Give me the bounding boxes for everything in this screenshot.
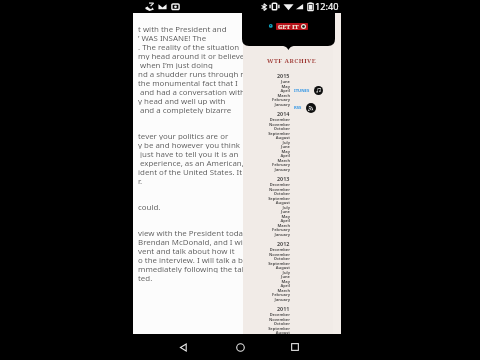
button[interactable]: May (243, 149, 290, 154)
staticText: Brendan McDonald, and I will (138, 237, 243, 246)
staticText: ted. (138, 273, 153, 282)
button[interactable]: October (243, 126, 290, 131)
staticText: 12:40 (315, 0, 339, 13)
button[interactable]: October (243, 191, 290, 196)
staticText: October (273, 256, 290, 261)
button[interactable]: September (243, 326, 290, 331)
staticText: September (268, 196, 290, 201)
button[interactable]: May (243, 214, 290, 219)
button[interactable]: July (243, 140, 290, 145)
button[interactable]: December (243, 247, 290, 252)
button[interactable]: March (243, 288, 290, 293)
button[interactable]: December (243, 117, 290, 122)
staticText: February (272, 227, 290, 232)
button[interactable]: November (243, 252, 290, 257)
button[interactable]: March (243, 158, 290, 163)
button[interactable]: October (243, 256, 290, 261)
button[interactable]: November (243, 187, 290, 192)
button[interactable]: July (243, 205, 290, 210)
staticText: July (282, 205, 290, 210)
staticText: October (273, 126, 290, 131)
button[interactable]: April (243, 348, 290, 353)
staticText: November (269, 187, 290, 192)
button[interactable]: December (243, 312, 290, 317)
staticText: o the interview. I will talk a bit (138, 255, 243, 264)
staticText: tever your politics are or (138, 131, 229, 140)
button[interactable]: February (243, 162, 290, 167)
button[interactable]: January (243, 297, 290, 302)
staticText: January (274, 232, 290, 237)
button[interactable]: June (243, 79, 290, 84)
button[interactable]: September (243, 131, 290, 136)
staticText: February (272, 162, 290, 167)
button[interactable]: May (243, 344, 290, 349)
button[interactable]: July (243, 270, 290, 275)
staticText: April (280, 153, 290, 158)
staticText: February (272, 97, 290, 102)
staticText: the monumental fact that I (138, 78, 238, 87)
staticText: 2013 (277, 175, 290, 182)
button[interactable]: Recents (281, 334, 309, 360)
staticText: January (274, 102, 290, 107)
staticText: February (272, 292, 290, 297)
staticText: vent and talk about how it (138, 246, 235, 255)
button[interactable]: May (243, 84, 290, 89)
staticText: June (281, 79, 290, 84)
button[interactable]: August (243, 265, 290, 270)
button[interactable]: Home (226, 334, 254, 360)
staticText: y be and however you think (138, 140, 240, 149)
button[interactable]: August (243, 135, 290, 140)
staticText: April (280, 218, 290, 223)
button[interactable]: April (243, 88, 290, 93)
staticText: 2012 (277, 240, 290, 247)
button[interactable]: May (243, 279, 290, 284)
staticText: ident of the United States. It (138, 167, 243, 176)
staticText: August (275, 330, 290, 335)
staticText: mmediately following the talk (138, 264, 243, 273)
button[interactable]: March (243, 223, 290, 228)
button[interactable]: June (243, 274, 290, 279)
button[interactable]: ITUNES (294, 86, 323, 95)
button[interactable]: February (243, 227, 290, 232)
button[interactable]: April (243, 283, 290, 288)
staticText: 2014 (277, 110, 290, 117)
button[interactable]: June (243, 144, 290, 149)
button[interactable]: August (243, 200, 290, 205)
staticText: November (269, 252, 290, 257)
button[interactable]: September (243, 196, 290, 201)
button[interactable]: November (243, 122, 290, 127)
staticText: June (281, 209, 290, 214)
button[interactable]: January (243, 232, 290, 237)
button[interactable]: June (243, 209, 290, 214)
button[interactable]: RSS (294, 103, 316, 113)
button[interactable]: February (243, 97, 290, 102)
button[interactable]: April (243, 218, 290, 223)
staticText: GET IT (278, 23, 299, 30)
staticText: my head around it or believe it (138, 51, 243, 60)
button[interactable]: Back (169, 334, 197, 360)
staticText: WTF ARCHIVE (267, 57, 317, 65)
staticText: September (268, 131, 290, 136)
button[interactable]: August (243, 330, 290, 335)
button[interactable]: January (243, 167, 290, 172)
button[interactable]: December (243, 182, 290, 187)
staticText: January (274, 297, 290, 302)
button[interactable]: January (243, 102, 290, 107)
staticText: October (273, 321, 290, 326)
button[interactable]: September (243, 261, 290, 266)
staticText: ’ WAS INSANE! The (138, 33, 207, 42)
button[interactable]: GET IT (276, 23, 308, 30)
staticText: March (277, 93, 290, 98)
button[interactable]: October (243, 321, 290, 326)
staticText: March (277, 223, 290, 228)
button[interactable]: April (243, 153, 290, 158)
button[interactable]: February (243, 292, 290, 297)
button[interactable]: March (243, 93, 290, 98)
button[interactable]: November (243, 317, 290, 322)
